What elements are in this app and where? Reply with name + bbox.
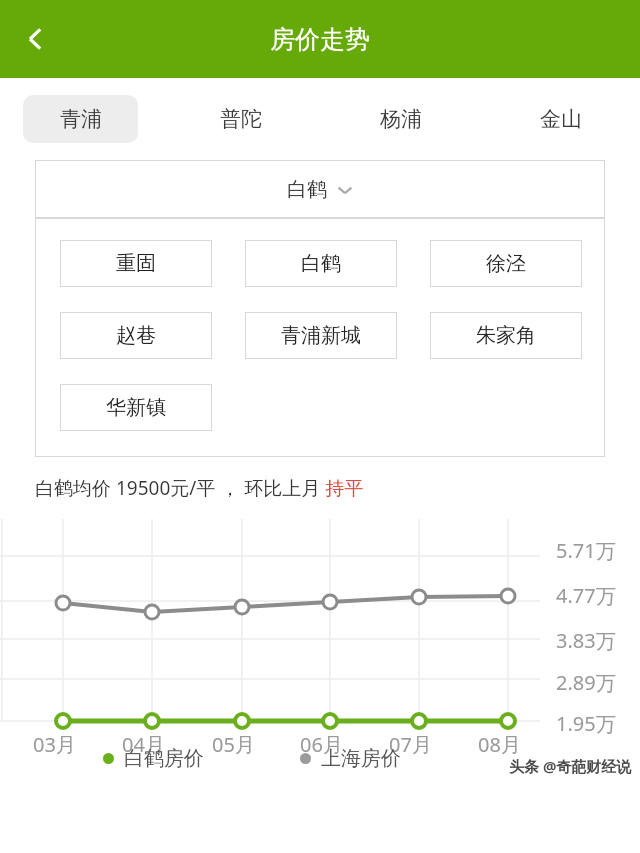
staticText: 朱家角: [476, 323, 536, 348]
button[interactable]: 青浦新城: [245, 312, 397, 359]
staticText: 白鹤: [301, 251, 341, 276]
button[interactable]: 赵巷: [60, 312, 212, 359]
staticText: 2.89万: [556, 669, 616, 696]
staticText: 06月: [300, 731, 343, 758]
staticText: 05月: [212, 731, 255, 758]
staticText: 杨浦: [380, 106, 422, 132]
staticText: 白鹤房价: [124, 746, 204, 771]
staticText: 04月: [122, 731, 165, 758]
staticText: 3.83万: [556, 627, 616, 654]
staticText: 金山: [540, 106, 582, 132]
staticText: 青浦: [60, 106, 102, 132]
staticText: 5.71万: [556, 537, 616, 564]
staticText: 青浦新城: [281, 323, 361, 348]
button[interactable]: 白鹤: [35, 160, 605, 218]
button[interactable]: 杨浦: [343, 95, 458, 143]
staticText: 白鹤: [287, 177, 327, 202]
staticText: 头条 @奇葩财经说: [509, 756, 632, 776]
button[interactable]: Back: [8, 11, 64, 67]
staticText: 徐泾: [486, 251, 526, 276]
staticText: 赵巷: [116, 323, 156, 348]
staticText: 房价走势: [270, 24, 370, 55]
staticText: 07月: [389, 731, 432, 758]
staticText: 上海房价: [321, 746, 401, 771]
staticText: 重固: [116, 251, 156, 276]
staticText: 1.95万: [556, 710, 616, 737]
staticText: 白鹤均价 19500元/平 ， 环比上月 持平: [35, 475, 364, 501]
staticText: 华新镇: [106, 395, 166, 420]
staticText: 普陀: [220, 106, 262, 132]
button[interactable]: 普陀: [183, 95, 298, 143]
button[interactable]: 华新镇: [60, 384, 212, 431]
button[interactable]: 重固: [60, 240, 212, 287]
staticText: 03月: [33, 731, 76, 758]
button[interactable]: 青浦: [23, 95, 138, 143]
button[interactable]: 白鹤: [245, 240, 397, 287]
staticText: 08月: [478, 731, 521, 758]
button[interactable]: 金山: [503, 95, 618, 143]
button[interactable]: 徐泾: [430, 240, 582, 287]
staticText: 4.77万: [556, 582, 616, 609]
button[interactable]: 朱家角: [430, 312, 582, 359]
